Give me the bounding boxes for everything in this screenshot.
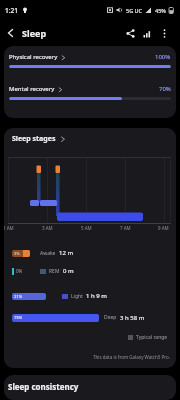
staticText: 3 h 58 m bbox=[120, 314, 145, 322]
staticText: 70% bbox=[159, 85, 171, 93]
staticText: 100% bbox=[155, 53, 171, 61]
staticText: 5G UC bbox=[126, 7, 143, 14]
staticText: 21% bbox=[14, 294, 23, 300]
staticText: REM bbox=[49, 268, 60, 275]
staticText: 3 AM bbox=[42, 225, 53, 231]
staticText: 12 m bbox=[59, 249, 74, 257]
button[interactable]: Mental recovery bbox=[9, 78, 171, 100]
button[interactable] bbox=[158, 27, 170, 39]
staticText: 45% bbox=[155, 7, 166, 14]
staticText: 5 AM bbox=[81, 225, 92, 231]
button[interactable]: Physical recovery bbox=[9, 46, 171, 68]
staticText: 0% bbox=[16, 268, 23, 274]
staticText: Typical range bbox=[136, 334, 168, 341]
staticText: Mental recovery bbox=[9, 85, 55, 93]
staticText: Light bbox=[71, 293, 83, 300]
staticText: 1 AM bbox=[4, 225, 14, 231]
button[interactable] bbox=[6, 26, 16, 40]
staticText: 9 AM bbox=[158, 225, 169, 231]
staticText: Physical recovery bbox=[9, 53, 58, 61]
staticText: 3% bbox=[14, 251, 20, 256]
staticText: This data is from Galaxy Watch5 Pro. bbox=[93, 354, 170, 360]
staticText: 1 h 9 m bbox=[86, 292, 107, 300]
staticText: Sleep stages bbox=[12, 134, 56, 144]
button[interactable] bbox=[124, 26, 136, 40]
staticText: Sleep consistency bbox=[8, 381, 79, 392]
staticText: Awake bbox=[40, 250, 56, 257]
button[interactable]: Sleep stages bbox=[12, 134, 66, 144]
staticText: 7 AM bbox=[120, 225, 131, 231]
button[interactable]: Sleep consistency bbox=[4, 375, 176, 400]
staticText: Deep bbox=[104, 314, 117, 321]
staticText: 75% bbox=[14, 315, 23, 321]
staticText: Sleep bbox=[22, 27, 47, 39]
staticText: 0 m bbox=[63, 267, 74, 275]
staticText: 1:21 bbox=[5, 6, 18, 15]
button[interactable] bbox=[141, 26, 153, 40]
